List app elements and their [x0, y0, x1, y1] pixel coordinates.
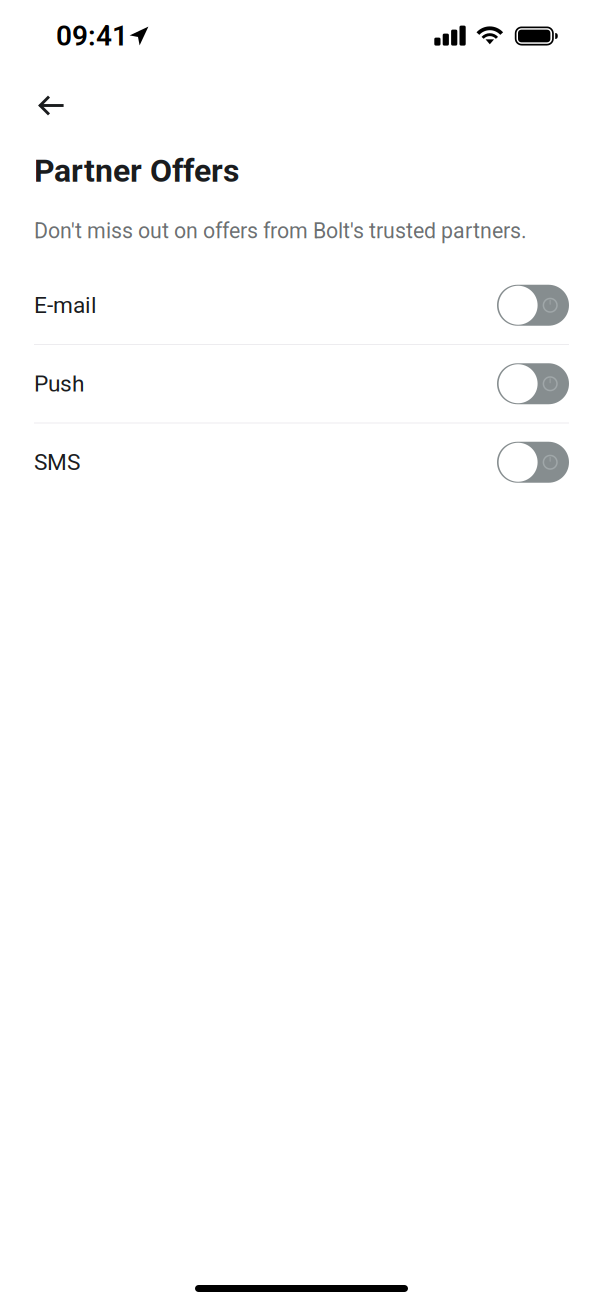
- staticText: 09:41: [56, 20, 128, 52]
- staticText: Don't miss out on offers from Bolt's tru…: [34, 218, 527, 243]
- staticText: SMS: [34, 449, 80, 476]
- button[interactable]: Back: [0, 83, 83, 128]
- button[interactable]: SMS: [0, 423, 603, 501]
- button[interactable]: Push: [0, 345, 603, 422]
- staticText: Partner Offers: [34, 152, 239, 189]
- staticText: E-mail: [34, 292, 97, 319]
- button[interactable]: E-mail: [0, 266, 603, 344]
- staticText: Push: [34, 370, 84, 397]
